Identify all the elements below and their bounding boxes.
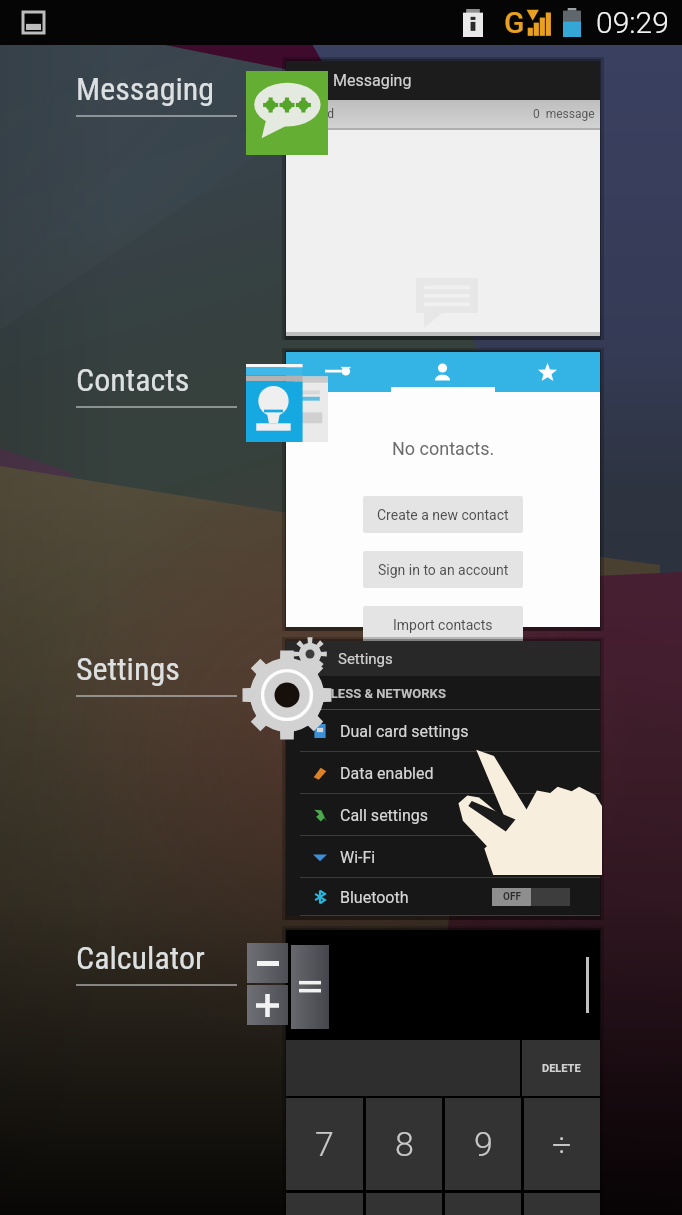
button[interactable]: Create a new contact <box>363 496 523 533</box>
button[interactable]: Minus <box>247 943 288 983</box>
staticText: DELETE <box>542 1062 581 1075</box>
button[interactable]: Plus <box>247 985 288 1025</box>
staticText: G <box>504 5 525 40</box>
staticText: Data enabled <box>340 764 434 783</box>
button[interactable] <box>286 352 390 392</box>
staticText: 9 <box>474 1124 493 1164</box>
staticText: OFF <box>503 891 521 903</box>
button[interactable]: Sign in to an account <box>363 551 523 588</box>
staticText: Settings <box>338 650 393 668</box>
button[interactable]: 9 <box>445 1098 521 1190</box>
staticText: Bluetooth <box>340 888 409 907</box>
button[interactable]: OFF <box>492 888 570 906</box>
button[interactable]: Messaging app icon <box>246 71 328 155</box>
button[interactable]: Dual card settings <box>286 710 600 752</box>
staticText: Messaging <box>76 70 215 108</box>
staticText: Dual card settings <box>340 722 469 741</box>
staticText: Contacts <box>76 361 190 399</box>
staticText: WIRELESS & NETWORKS <box>300 686 446 701</box>
staticText: 8 <box>395 1124 414 1164</box>
button[interactable]: DELETE <box>522 1040 600 1096</box>
button[interactable]: ÷ <box>524 1098 600 1190</box>
staticText: Sign in to an account <box>378 562 509 578</box>
staticText: Create a new contact <box>377 507 509 523</box>
staticText: Settings <box>76 650 180 688</box>
staticText: Calculator <box>76 939 205 977</box>
button[interactable]: Contacts app icon <box>246 364 328 442</box>
button[interactable]: Calculator <box>76 939 237 986</box>
staticText: 7 <box>315 1124 334 1164</box>
staticText: Unread <box>296 107 335 121</box>
staticText: ÷ <box>552 1124 572 1164</box>
button[interactable]: No contacts. <box>286 352 600 627</box>
staticText: Wi-Fi <box>340 848 376 867</box>
button[interactable]: Messaging <box>286 61 600 336</box>
button[interactable]: Import contacts <box>363 606 523 643</box>
button[interactable]: Equals <box>291 945 329 1029</box>
button[interactable]: Wi-Fi <box>286 836 600 878</box>
button[interactable]: Settings <box>76 650 237 697</box>
staticText: No contacts. <box>392 438 495 459</box>
button[interactable]: 7 <box>286 1098 363 1190</box>
staticText: 09:29 <box>596 5 669 40</box>
button[interactable]: DELETE <box>286 930 600 1215</box>
button[interactable]: Settings app icon <box>237 644 341 748</box>
button[interactable] <box>495 352 600 392</box>
button[interactable]: 8 <box>366 1098 442 1190</box>
button[interactable]: Data enabled <box>286 752 600 794</box>
staticText: Messaging <box>333 71 412 90</box>
button[interactable] <box>390 352 495 392</box>
staticText: Import contacts <box>393 617 493 633</box>
button[interactable]: Bluetooth <box>286 878 600 916</box>
button[interactable]: Messaging <box>76 70 237 117</box>
other: Screenshot captured <box>22 11 45 34</box>
button[interactable]: Contacts <box>76 361 237 408</box>
button[interactable]: Settings <box>286 641 600 916</box>
staticText: 0 message <box>533 107 595 121</box>
button[interactable]: Call settings <box>286 794 600 836</box>
staticText: Call settings <box>340 806 429 825</box>
